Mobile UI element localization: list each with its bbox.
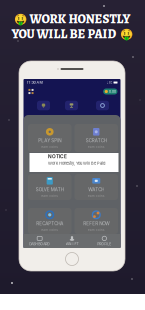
button[interactable]: DASHBOARD <box>23 234 56 247</box>
staticText: SOLVE MATH <box>36 187 64 192</box>
staticText: WALLET <box>65 242 78 246</box>
button[interactable]: WALLET <box>56 234 88 247</box>
button[interactable]: Refresh <box>96 101 109 110</box>
staticText: earn coins <box>41 228 58 232</box>
staticText: earn coins <box>88 228 105 232</box>
staticText: DASHBOARD <box>29 242 50 246</box>
button[interactable]: REFER NOW <box>74 208 118 234</box>
button[interactable]: PROFILE <box>88 234 120 247</box>
staticText: RECAPTCHA <box>36 221 63 226</box>
staticText: earn coins <box>41 145 58 149</box>
staticText: 11:30 AM <box>26 80 42 85</box>
button[interactable]: WATCH <box>74 174 118 200</box>
staticText: WATCH <box>88 187 104 192</box>
button[interactable]: SCRATCH <box>74 124 118 152</box>
staticText: LTE <box>106 81 112 84</box>
staticText: SCRATCH <box>86 138 107 143</box>
staticText: WORK HONESTLY <box>29 10 130 28</box>
staticText: earn coins <box>41 194 58 198</box>
staticText: NOTICE <box>48 154 67 159</box>
button[interactable]: Leaderboard <box>65 101 78 110</box>
button[interactable]: PLAY SPIN <box>28 124 71 152</box>
staticText: earn coins <box>88 145 105 149</box>
staticText: 🤑 <box>13 13 26 25</box>
staticText: 0.00 <box>109 90 116 93</box>
staticText: YOU WILL BE PAID <box>11 25 116 43</box>
button[interactable]: SOLVE MATH <box>28 174 71 200</box>
staticText: REFER NOW <box>83 221 109 226</box>
staticText: 🤑 <box>119 28 132 40</box>
button[interactable]: Menu <box>26 87 35 96</box>
staticText: PLAY SPIN <box>38 138 61 143</box>
button[interactable]: RECAPTCHA <box>28 208 71 234</box>
staticText: PROFILE <box>97 242 111 246</box>
button[interactable]: Notifications <box>37 101 50 110</box>
staticText: Work Honestly, You Will Be Paid <box>48 161 105 166</box>
staticText: earn coins <box>88 194 105 198</box>
button[interactable]: 0.00 <box>103 88 117 95</box>
